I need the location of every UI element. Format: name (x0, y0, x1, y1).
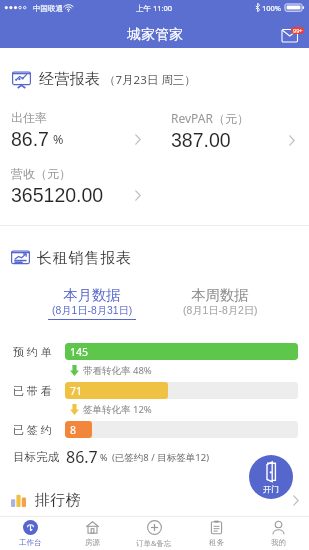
staticText: 租务 (209, 538, 224, 547)
button[interactable]: 营收（元） (11, 166, 155, 206)
staticText: 排行榜 (35, 491, 81, 510)
staticText: (8月1日-8月2日) (183, 304, 258, 317)
staticText: 订单&备忘 (136, 538, 172, 548)
staticText: 预 约 单 (13, 344, 58, 359)
button[interactable]: 本周数据 (156, 286, 284, 320)
button[interactable]: RevPAR（元） (171, 110, 309, 151)
button[interactable]: 租务 (185, 517, 247, 550)
staticText: RevPAR（元） (171, 110, 249, 126)
staticText: 上午 11:00 (136, 3, 173, 13)
staticText: 71 (70, 384, 83, 398)
staticText: 86.7 (66, 446, 98, 468)
staticText: 带看转化率 48% (83, 364, 152, 377)
staticText: 365120.00 (11, 184, 104, 206)
staticText: 已 签 约 (13, 422, 58, 437)
staticText: 房源 (85, 538, 100, 547)
staticText: 目标完成 (13, 450, 59, 464)
button[interactable]: 订单&备忘 (123, 517, 185, 550)
staticText: 工作台 (19, 538, 42, 547)
staticText: 本月数据 (63, 286, 121, 304)
staticText: (8月1日-8月31日) (52, 304, 133, 317)
button[interactable]: 本月数据 (28, 286, 156, 320)
staticText: 145 (70, 345, 89, 359)
button[interactable]: 房源 (61, 517, 123, 550)
staticText: 出住率 (11, 110, 47, 125)
staticText: % (100, 451, 108, 463)
staticText: 营收（元） (11, 166, 71, 181)
staticText: 100% (262, 3, 282, 13)
button[interactable]: 我的 (247, 517, 309, 550)
staticText: 本周数据 (191, 286, 249, 304)
button[interactable]: Messages (277, 23, 305, 45)
staticText: 开门 (263, 484, 279, 494)
staticText: 经营报表 (39, 70, 101, 89)
staticText: 长租销售报表 (37, 249, 132, 268)
staticText: 86.7 (11, 128, 49, 150)
staticText: 8 (70, 423, 77, 437)
staticText: % (53, 131, 64, 148)
staticText: 99+ (293, 27, 303, 34)
staticText: 签单转化率 12% (83, 403, 152, 416)
button[interactable]: 出住率 (11, 110, 155, 150)
staticText: （7月23日 周三） (104, 72, 196, 88)
staticText: 已 带 看 (13, 383, 58, 398)
staticText: 387.00 (171, 129, 231, 151)
staticText: 城家管家 (127, 26, 183, 44)
staticText: (已签约8 / 目标签单12) (112, 451, 209, 464)
button[interactable]: 开门 Open door (249, 455, 293, 499)
staticText: 我的 (271, 538, 286, 547)
button[interactable]: 工作台 (0, 517, 61, 550)
staticText: 中国联通 (33, 4, 63, 13)
